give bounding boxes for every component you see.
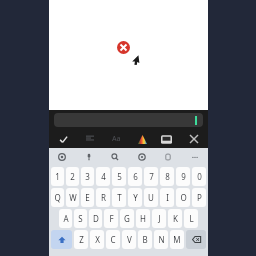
button[interactable]: 4: [96, 167, 110, 186]
button[interactable]: 2: [66, 167, 79, 186]
staticText: X: [95, 234, 100, 245]
button[interactable]: More options: [188, 150, 202, 164]
button[interactable]: Google Assistant: [55, 150, 69, 164]
staticText: Z: [79, 234, 84, 245]
staticText: 8: [165, 171, 170, 182]
staticText: P: [197, 192, 202, 203]
staticText: J: [158, 213, 161, 224]
button[interactable]: S: [74, 209, 87, 228]
button[interactable]: W: [66, 188, 79, 207]
button[interactable]: Search: [108, 150, 122, 164]
button[interactable]: [54, 113, 203, 127]
button[interactable]: 0: [192, 167, 206, 186]
button[interactable]: Q: [51, 188, 64, 207]
button[interactable]: Sticker: [135, 150, 149, 164]
staticText: L: [189, 213, 194, 224]
button[interactable]: M: [170, 230, 184, 249]
button[interactable]: 3: [81, 167, 94, 186]
button[interactable]: Send: [55, 131, 71, 147]
button[interactable]: U: [144, 188, 158, 207]
button[interactable]: L: [184, 209, 198, 228]
staticText: 4: [101, 171, 106, 182]
button[interactable]: Close: [186, 131, 202, 147]
button[interactable]: H: [136, 209, 150, 228]
button[interactable]: Voice input: [82, 150, 96, 164]
button[interactable]: 5: [112, 167, 126, 186]
button[interactable]: F: [104, 209, 118, 228]
staticText: 1: [55, 171, 60, 182]
staticText: Q: [54, 192, 61, 203]
button[interactable]: Y: [128, 188, 142, 207]
button[interactable]: T: [112, 188, 126, 207]
button[interactable]: 8: [160, 167, 174, 186]
staticText: Aa: [112, 134, 121, 144]
staticText: V: [127, 234, 132, 245]
button[interactable]: Align: [82, 131, 98, 147]
button[interactable]: J: [152, 209, 166, 228]
staticText: U: [148, 192, 154, 203]
button[interactable]: Backspace: [186, 230, 206, 249]
button[interactable]: 7: [144, 167, 158, 186]
staticText: K: [173, 213, 178, 224]
staticText: Y: [133, 192, 138, 203]
button[interactable]: Insert image: [158, 131, 174, 147]
staticText: 6: [133, 171, 138, 182]
staticText: 5: [117, 171, 122, 182]
button[interactable]: X: [90, 230, 104, 249]
button[interactable]: Text format: [108, 131, 124, 147]
button[interactable]: Z: [74, 230, 88, 249]
staticText: H: [140, 213, 146, 224]
button[interactable]: P: [192, 188, 206, 207]
button[interactable]: A: [59, 209, 72, 228]
staticText: I: [166, 192, 169, 203]
staticText: N: [158, 234, 165, 245]
staticText: S: [78, 213, 83, 224]
staticText: T: [117, 192, 122, 203]
button[interactable]: Clipboard: [161, 150, 175, 164]
button[interactable]: Shift: [51, 230, 72, 249]
button[interactable]: Error marker: [117, 41, 130, 54]
staticText: 3: [85, 171, 90, 182]
button[interactable]: Colour: [134, 131, 150, 147]
staticText: E: [85, 192, 90, 203]
button[interactable]: B: [138, 230, 152, 249]
staticText: C: [110, 234, 116, 245]
staticText: 2: [70, 171, 75, 182]
button[interactable]: V: [122, 230, 136, 249]
button[interactable]: I: [160, 188, 174, 207]
staticText: 9: [181, 171, 186, 182]
button[interactable]: 6: [128, 167, 142, 186]
button[interactable]: 1: [51, 167, 64, 186]
staticText: 0: [197, 171, 202, 182]
button[interactable]: C: [106, 230, 120, 249]
staticText: 7: [149, 171, 154, 182]
staticText: W: [69, 192, 77, 203]
staticText: F: [109, 213, 114, 224]
button[interactable]: E: [81, 188, 94, 207]
button[interactable]: K: [168, 209, 182, 228]
button[interactable]: O: [176, 188, 190, 207]
button[interactable]: G: [120, 209, 134, 228]
button[interactable]: R: [96, 188, 110, 207]
staticText: O: [180, 192, 187, 203]
staticText: M: [173, 234, 181, 245]
staticText: A: [63, 213, 69, 224]
staticText: G: [124, 213, 130, 224]
staticText: R: [101, 192, 106, 203]
staticText: B: [142, 234, 148, 245]
button[interactable]: N: [154, 230, 168, 249]
button[interactable]: D: [89, 209, 102, 228]
staticText: D: [93, 213, 99, 224]
button[interactable]: 9: [176, 167, 190, 186]
